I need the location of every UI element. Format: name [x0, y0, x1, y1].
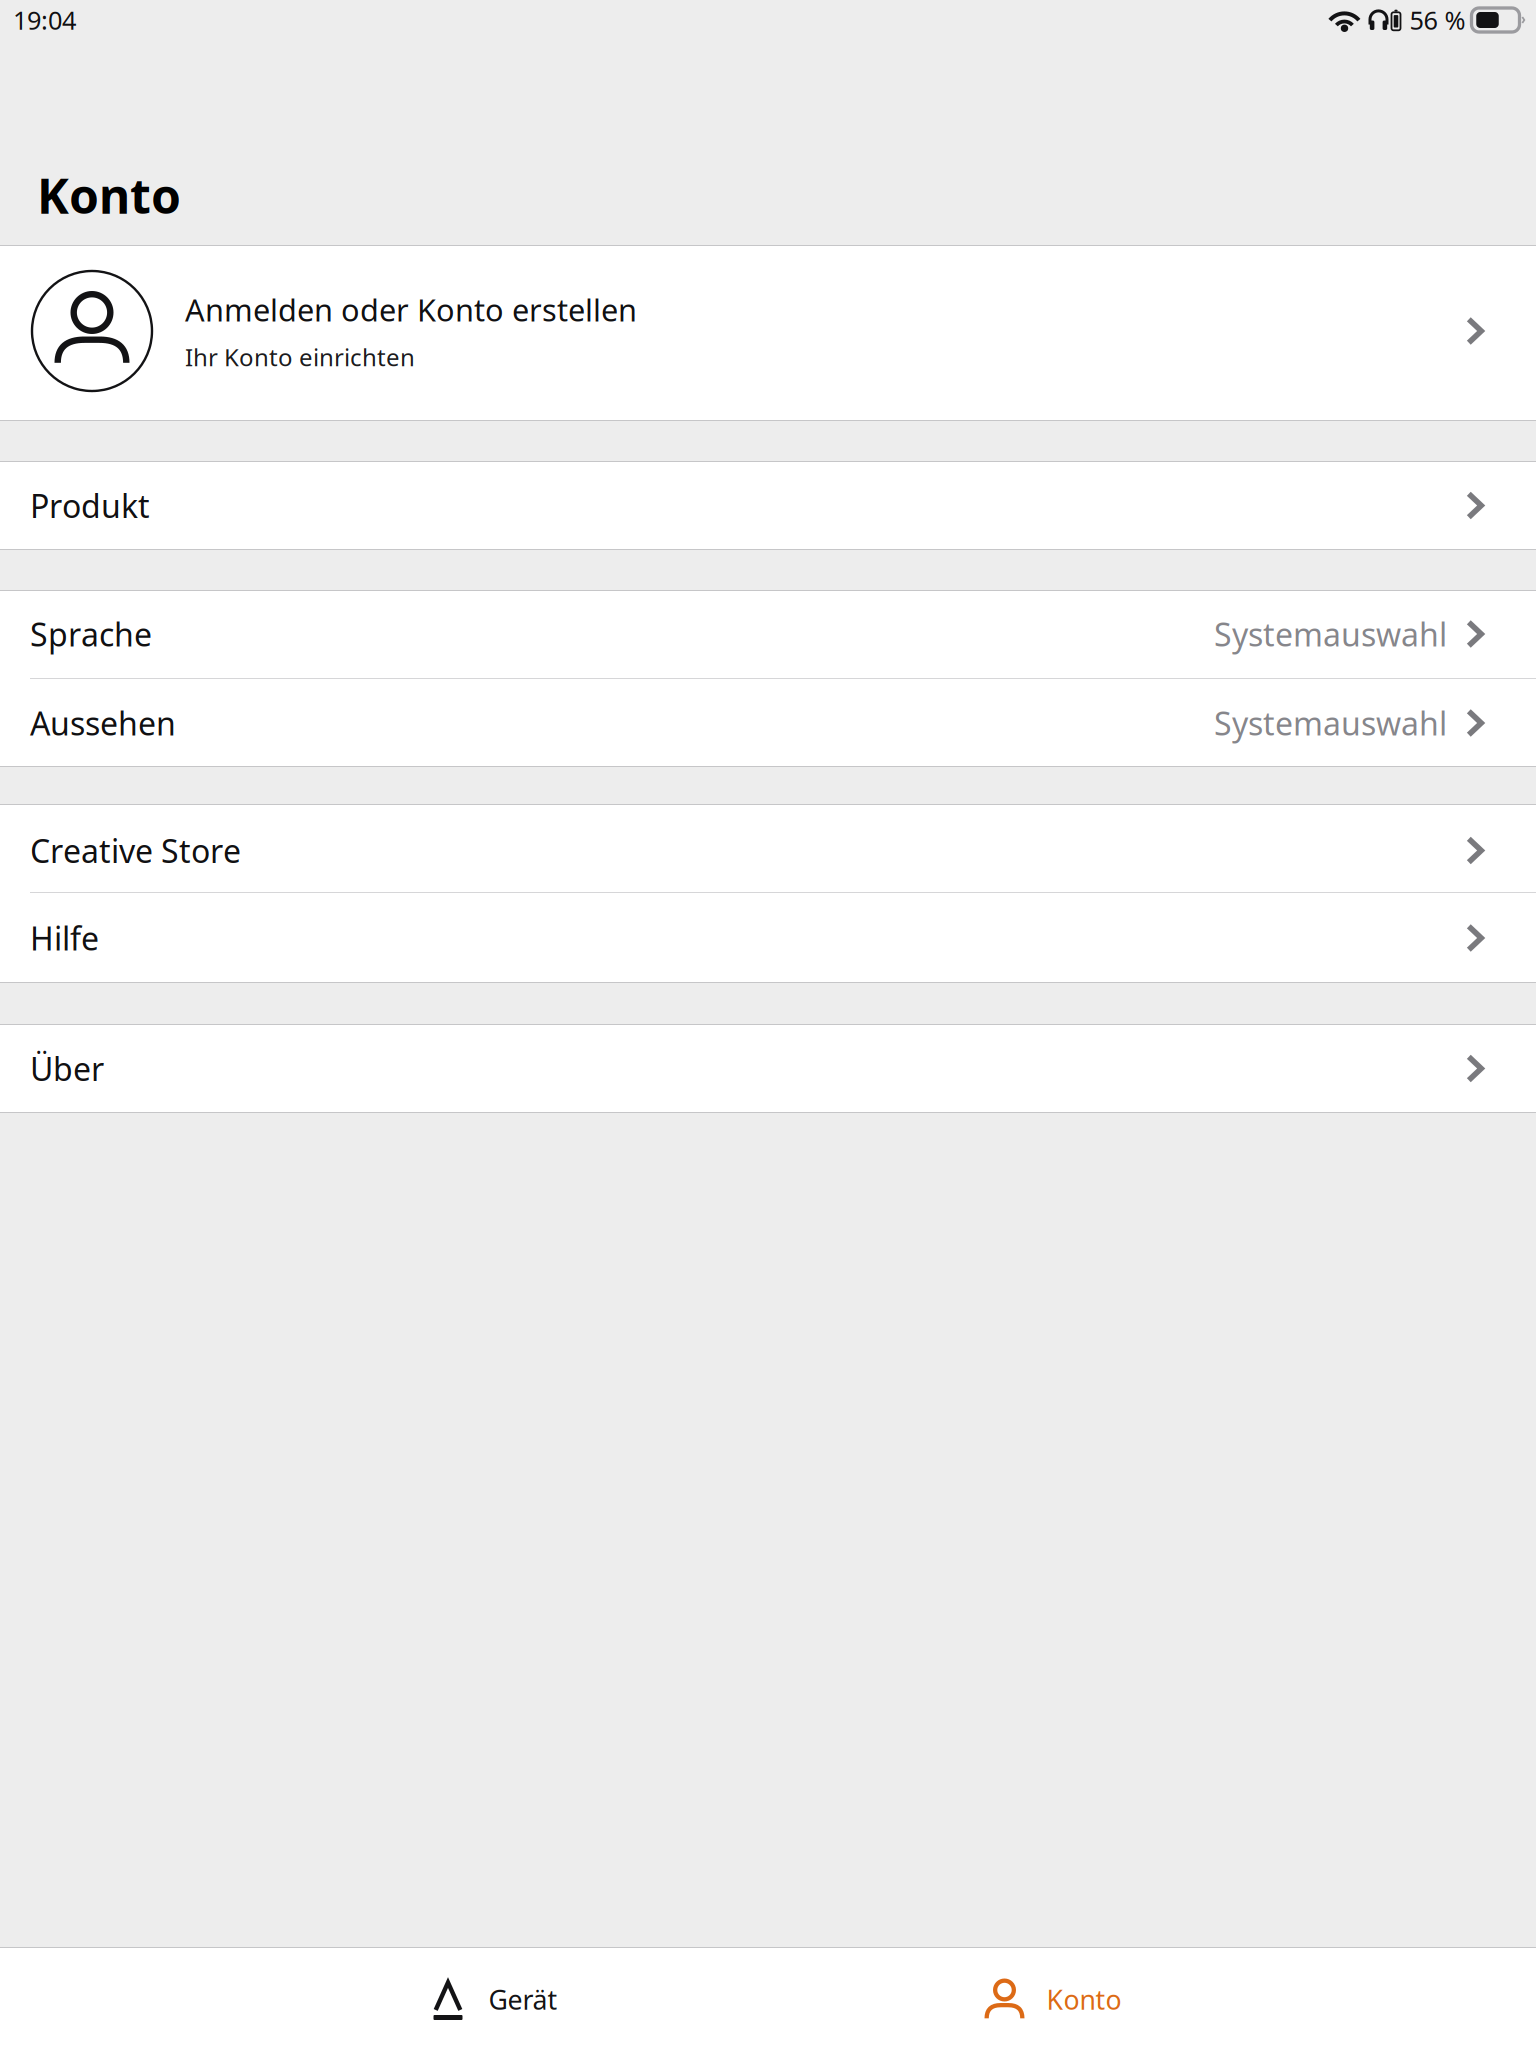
staticText: 56 % — [1409, 3, 1465, 37]
button[interactable]: Gerät — [433, 1947, 557, 2048]
button[interactable]: Aussehen — [0, 679, 1536, 767]
staticText: Konto — [37, 163, 181, 227]
staticText: Hilfe — [30, 917, 99, 959]
staticText: 19:04 — [13, 3, 76, 37]
staticText: Gerät — [488, 1982, 557, 2017]
button[interactable]: Anmelden oder Konto erstellen — [0, 245, 1536, 421]
button[interactable]: Hilfe — [0, 893, 1536, 983]
button[interactable]: Über — [0, 1024, 1536, 1113]
staticText: Anmelden oder Konto erstellen — [185, 289, 637, 330]
staticText: Aussehen — [30, 702, 176, 744]
staticText: Sprache — [30, 613, 152, 655]
staticText: Konto — [1046, 1982, 1121, 2017]
staticText: Systemauswahl — [1214, 613, 1447, 655]
button[interactable]: Creative Store — [0, 804, 1536, 892]
staticText: Über — [30, 1047, 104, 1090]
staticText: Ihr Konto einrichten — [185, 341, 415, 373]
staticText: Creative Store — [30, 829, 241, 872]
staticText: Produkt — [30, 484, 150, 527]
button[interactable]: Konto — [984, 1947, 1121, 2048]
staticText: Systemauswahl — [1214, 702, 1447, 744]
button[interactable]: Sprache — [0, 590, 1536, 678]
button[interactable]: Produkt — [0, 461, 1536, 550]
